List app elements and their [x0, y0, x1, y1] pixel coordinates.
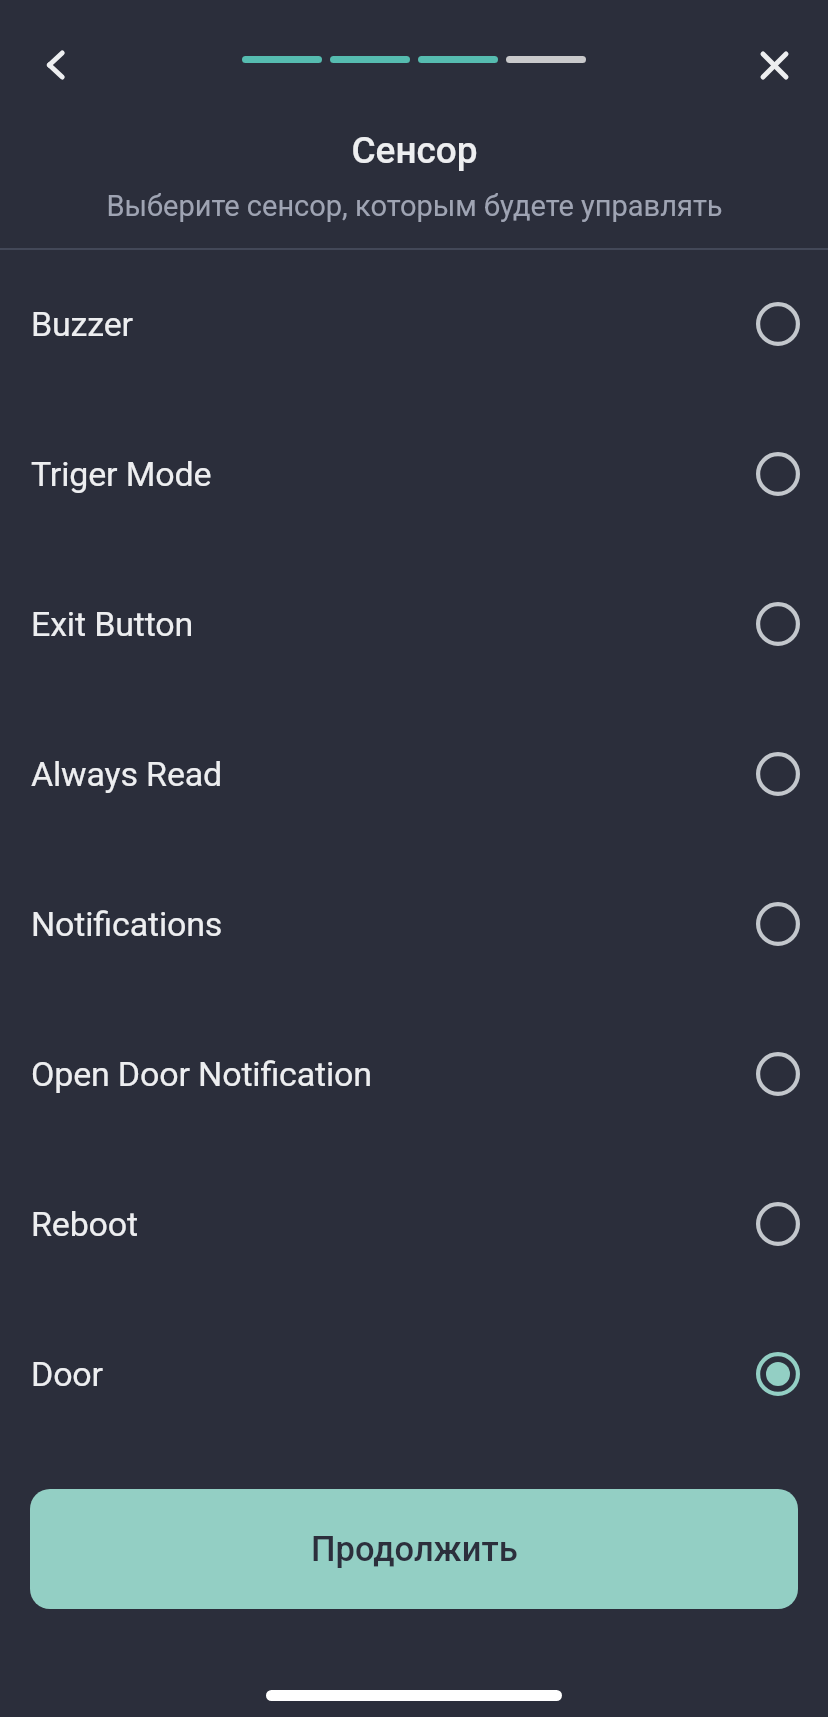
staticText: Reboot: [31, 1204, 138, 1244]
button[interactable]: Close: [744, 35, 804, 95]
button[interactable]: Exit Button: [0, 549, 828, 699]
staticText: Open Door Notification: [31, 1054, 372, 1094]
staticText: Сенсор: [351, 129, 478, 172]
button[interactable]: Продолжить: [30, 1489, 798, 1609]
staticText: Exit Button: [31, 604, 194, 644]
staticText: Triger Mode: [31, 454, 212, 494]
staticText: Door: [31, 1354, 103, 1394]
button[interactable]: Back: [25, 35, 85, 95]
staticText: Always Read: [31, 754, 223, 794]
staticText: Buzzer: [31, 304, 133, 344]
button[interactable]: Triger Mode: [0, 399, 828, 549]
button[interactable]: Open Door Notification: [0, 999, 828, 1149]
staticText: Notifications: [31, 904, 223, 944]
button[interactable]: Buzzer: [0, 249, 828, 399]
button[interactable]: Always Read: [0, 699, 828, 849]
staticText: Выберите сенсор, которым будете управлят…: [106, 189, 723, 223]
button[interactable]: Notifications: [0, 849, 828, 999]
button[interactable]: Door: [0, 1299, 828, 1449]
button[interactable]: Reboot: [0, 1149, 828, 1299]
staticText: Продолжить: [311, 1529, 518, 1569]
